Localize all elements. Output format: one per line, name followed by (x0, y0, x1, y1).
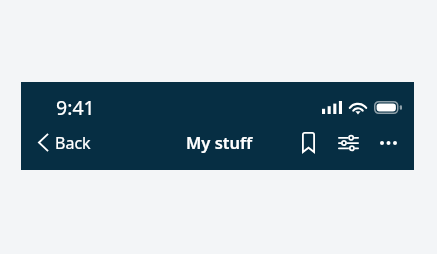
button[interactable]: Bookmark (294, 128, 322, 156)
staticText: My stuff (186, 131, 253, 153)
button[interactable]: More options (374, 129, 402, 157)
staticText: 9:41 (56, 94, 95, 121)
button[interactable]: Filter settings (334, 129, 362, 157)
staticText: Back (55, 132, 91, 154)
button[interactable]: Back (36, 127, 93, 157)
